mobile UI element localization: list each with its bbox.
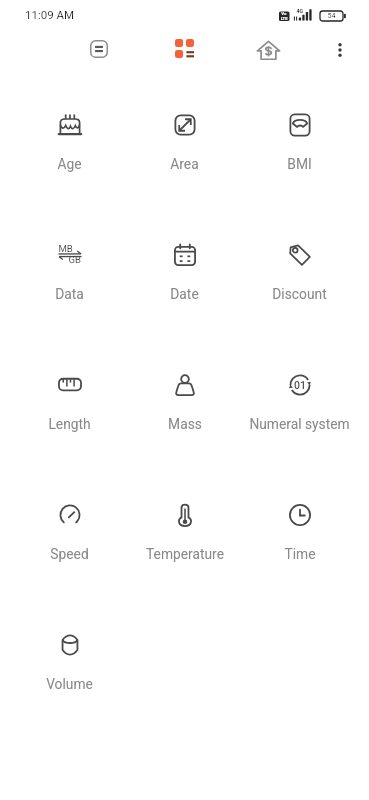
button[interactable]: Area: [127, 113, 242, 172]
staticText: Date: [170, 286, 199, 302]
button[interactable]: Date: [127, 243, 242, 302]
staticText: Numeral system: [249, 416, 350, 432]
staticText: 11:09 AM: [25, 8, 75, 21]
staticText: Discount: [272, 286, 327, 302]
staticText: BMI: [287, 156, 312, 172]
button[interactable]: Length: [12, 373, 127, 432]
staticText: Data: [55, 286, 84, 302]
button[interactable]: Time: [242, 503, 357, 562]
button[interactable]: Speed: [12, 503, 127, 562]
button[interactable]: Numeral system: [242, 373, 357, 432]
button[interactable]: Finance: [246, 28, 290, 68]
staticText: Age: [57, 156, 82, 172]
staticText: Area: [170, 156, 199, 172]
button[interactable]: Discount: [242, 243, 357, 302]
button[interactable]: Temperature: [127, 503, 242, 562]
staticText: Speed: [50, 546, 89, 562]
button[interactable]: Data: [12, 243, 127, 302]
button[interactable]: Mass: [127, 373, 242, 432]
button[interactable]: More options: [318, 28, 362, 72]
button[interactable]: Volume: [12, 633, 127, 692]
staticText: Temperature: [146, 546, 224, 562]
button[interactable]: Converters: [162, 28, 206, 68]
button[interactable]: Age: [12, 113, 127, 172]
staticText: Mass: [168, 416, 202, 432]
staticText: Time: [284, 546, 316, 562]
staticText: Volume: [46, 676, 93, 692]
button[interactable]: BMI: [242, 113, 357, 172]
button[interactable]: Calculator: [77, 28, 121, 70]
staticText: Length: [48, 416, 91, 432]
